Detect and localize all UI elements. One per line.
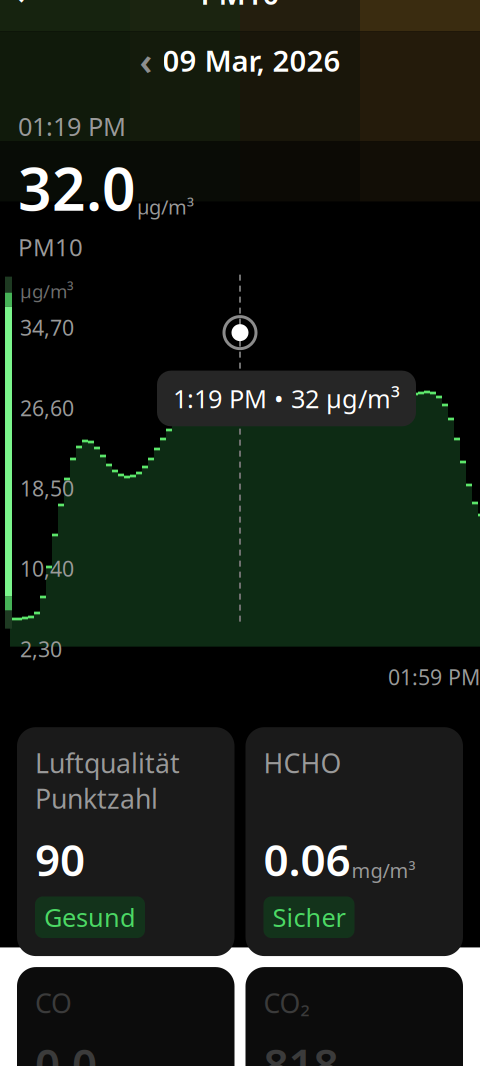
staticText: 0.0 [35,1034,97,1066]
staticText: ← [12,0,43,15]
staticText: Luftqualität Punktzahl [35,745,180,816]
staticText: 0.06 [263,830,350,888]
staticText: PM10 [18,231,83,263]
staticText: 10,40 [20,554,74,583]
staticText: CO [35,985,72,1020]
button[interactable]: Back [0,0,56,21]
staticText: 90 [35,830,85,888]
staticText: 09 Mar, 2026 [162,41,340,80]
staticText: 2,30 [20,635,62,663]
staticText: ‹ [139,36,152,85]
button[interactable]: HCHO [245,727,463,956]
staticText: HCHO [263,745,341,781]
staticText: 01:59 PM [388,663,480,691]
staticText: 34,70 [20,313,74,342]
staticText: µg/m³ [20,279,74,303]
staticText: 32.0 [18,149,136,227]
staticText: 26,60 [20,394,74,422]
staticText: CO₂ [263,985,309,1020]
staticText: PM10 [200,0,279,13]
staticText: 818 [263,1034,338,1066]
staticText: 01:19 PM [18,109,126,143]
staticText: 1:19 PM • 32 µg/m³ [173,382,400,415]
button[interactable]: ‹ [129,30,350,91]
button[interactable]: Luftqualität Punktzahl [17,727,234,956]
staticText: µg/m³ [137,193,194,220]
staticText: Gesund [44,900,136,934]
button[interactable]: CO [17,967,234,1066]
staticText: 18,50 [20,474,74,502]
staticText: Sicher [272,900,345,934]
staticText: mg/m³ [351,857,415,883]
button[interactable]: CO₂ [245,967,463,1066]
